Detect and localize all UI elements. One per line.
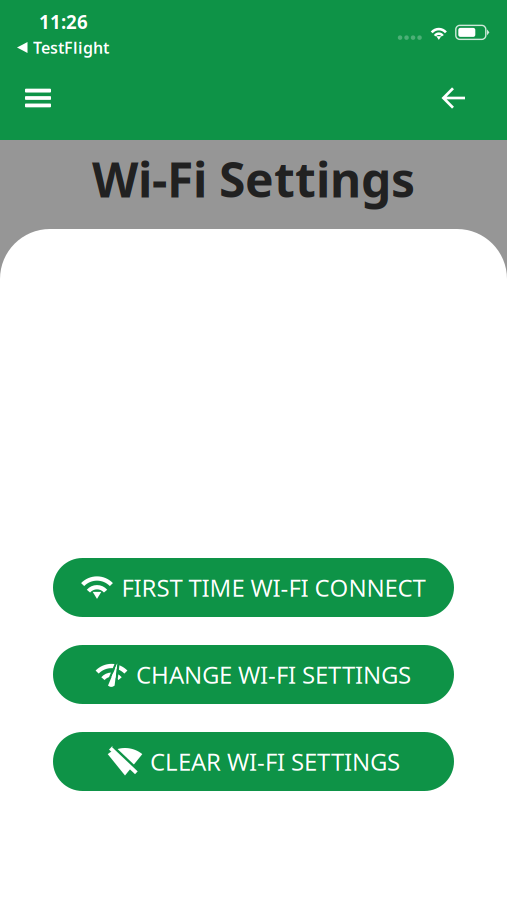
button[interactable]: Menu <box>12 72 64 124</box>
button[interactable]: CLEAR WI-FI SETTINGS <box>53 732 454 791</box>
staticText: CLEAR WI-FI SETTINGS <box>150 746 400 777</box>
staticText: FIRST TIME WI-FI CONNECT <box>121 572 425 603</box>
button[interactable]: Back <box>428 72 480 124</box>
staticText: TestFlight <box>33 37 109 58</box>
staticText: Wi-Fi Settings <box>92 147 415 211</box>
button[interactable]: FIRST TIME WI-FI CONNECT <box>53 558 454 617</box>
staticText: 11:26 <box>39 9 88 34</box>
button[interactable]: CHANGE WI-FI SETTINGS <box>53 645 454 704</box>
staticText: CHANGE WI-FI SETTINGS <box>136 659 411 690</box>
